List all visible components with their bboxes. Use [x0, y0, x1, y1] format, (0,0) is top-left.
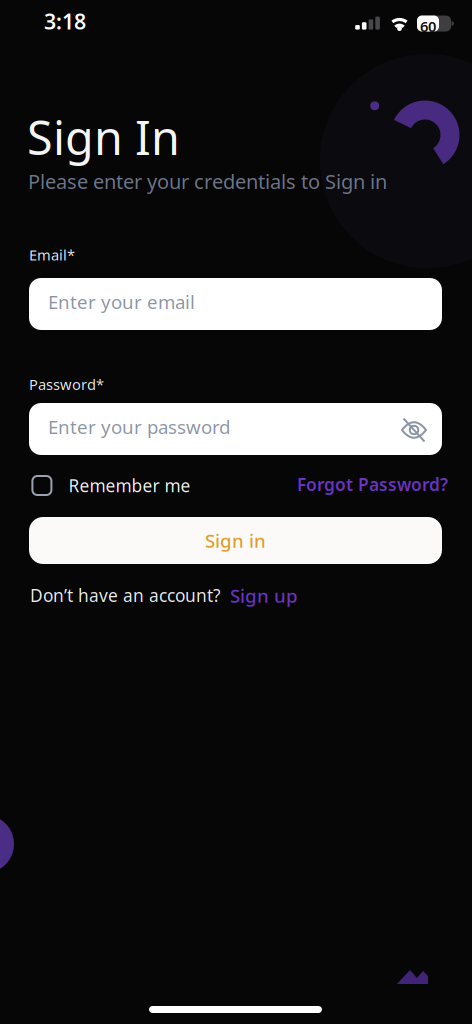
- staticText: Forgot Password?: [297, 473, 448, 496]
- staticText: Sign up: [230, 583, 298, 608]
- button[interactable]: Sign up: [230, 583, 298, 608]
- button[interactable]: Sign in: [29, 517, 442, 564]
- staticText: Enter your email: [48, 289, 195, 314]
- button[interactable]: Enter your password: [29, 403, 442, 455]
- staticText: Email*: [29, 245, 75, 264]
- button[interactable]: Remember me: [31, 474, 190, 497]
- staticText: 3:18: [44, 7, 86, 35]
- staticText: Password*: [29, 374, 104, 394]
- staticText: Please enter your credentials to Sign in: [28, 168, 387, 195]
- staticText: Enter your password: [48, 414, 230, 439]
- staticText: Remember me: [68, 474, 190, 497]
- staticText: 60: [420, 16, 436, 36]
- staticText: Sign In: [27, 106, 180, 168]
- button[interactable]: Enter your email: [29, 278, 442, 330]
- staticText: Don’t have an account?: [30, 584, 221, 607]
- button[interactable]: Forgot Password?: [297, 473, 448, 496]
- staticText: Sign in: [205, 528, 266, 553]
